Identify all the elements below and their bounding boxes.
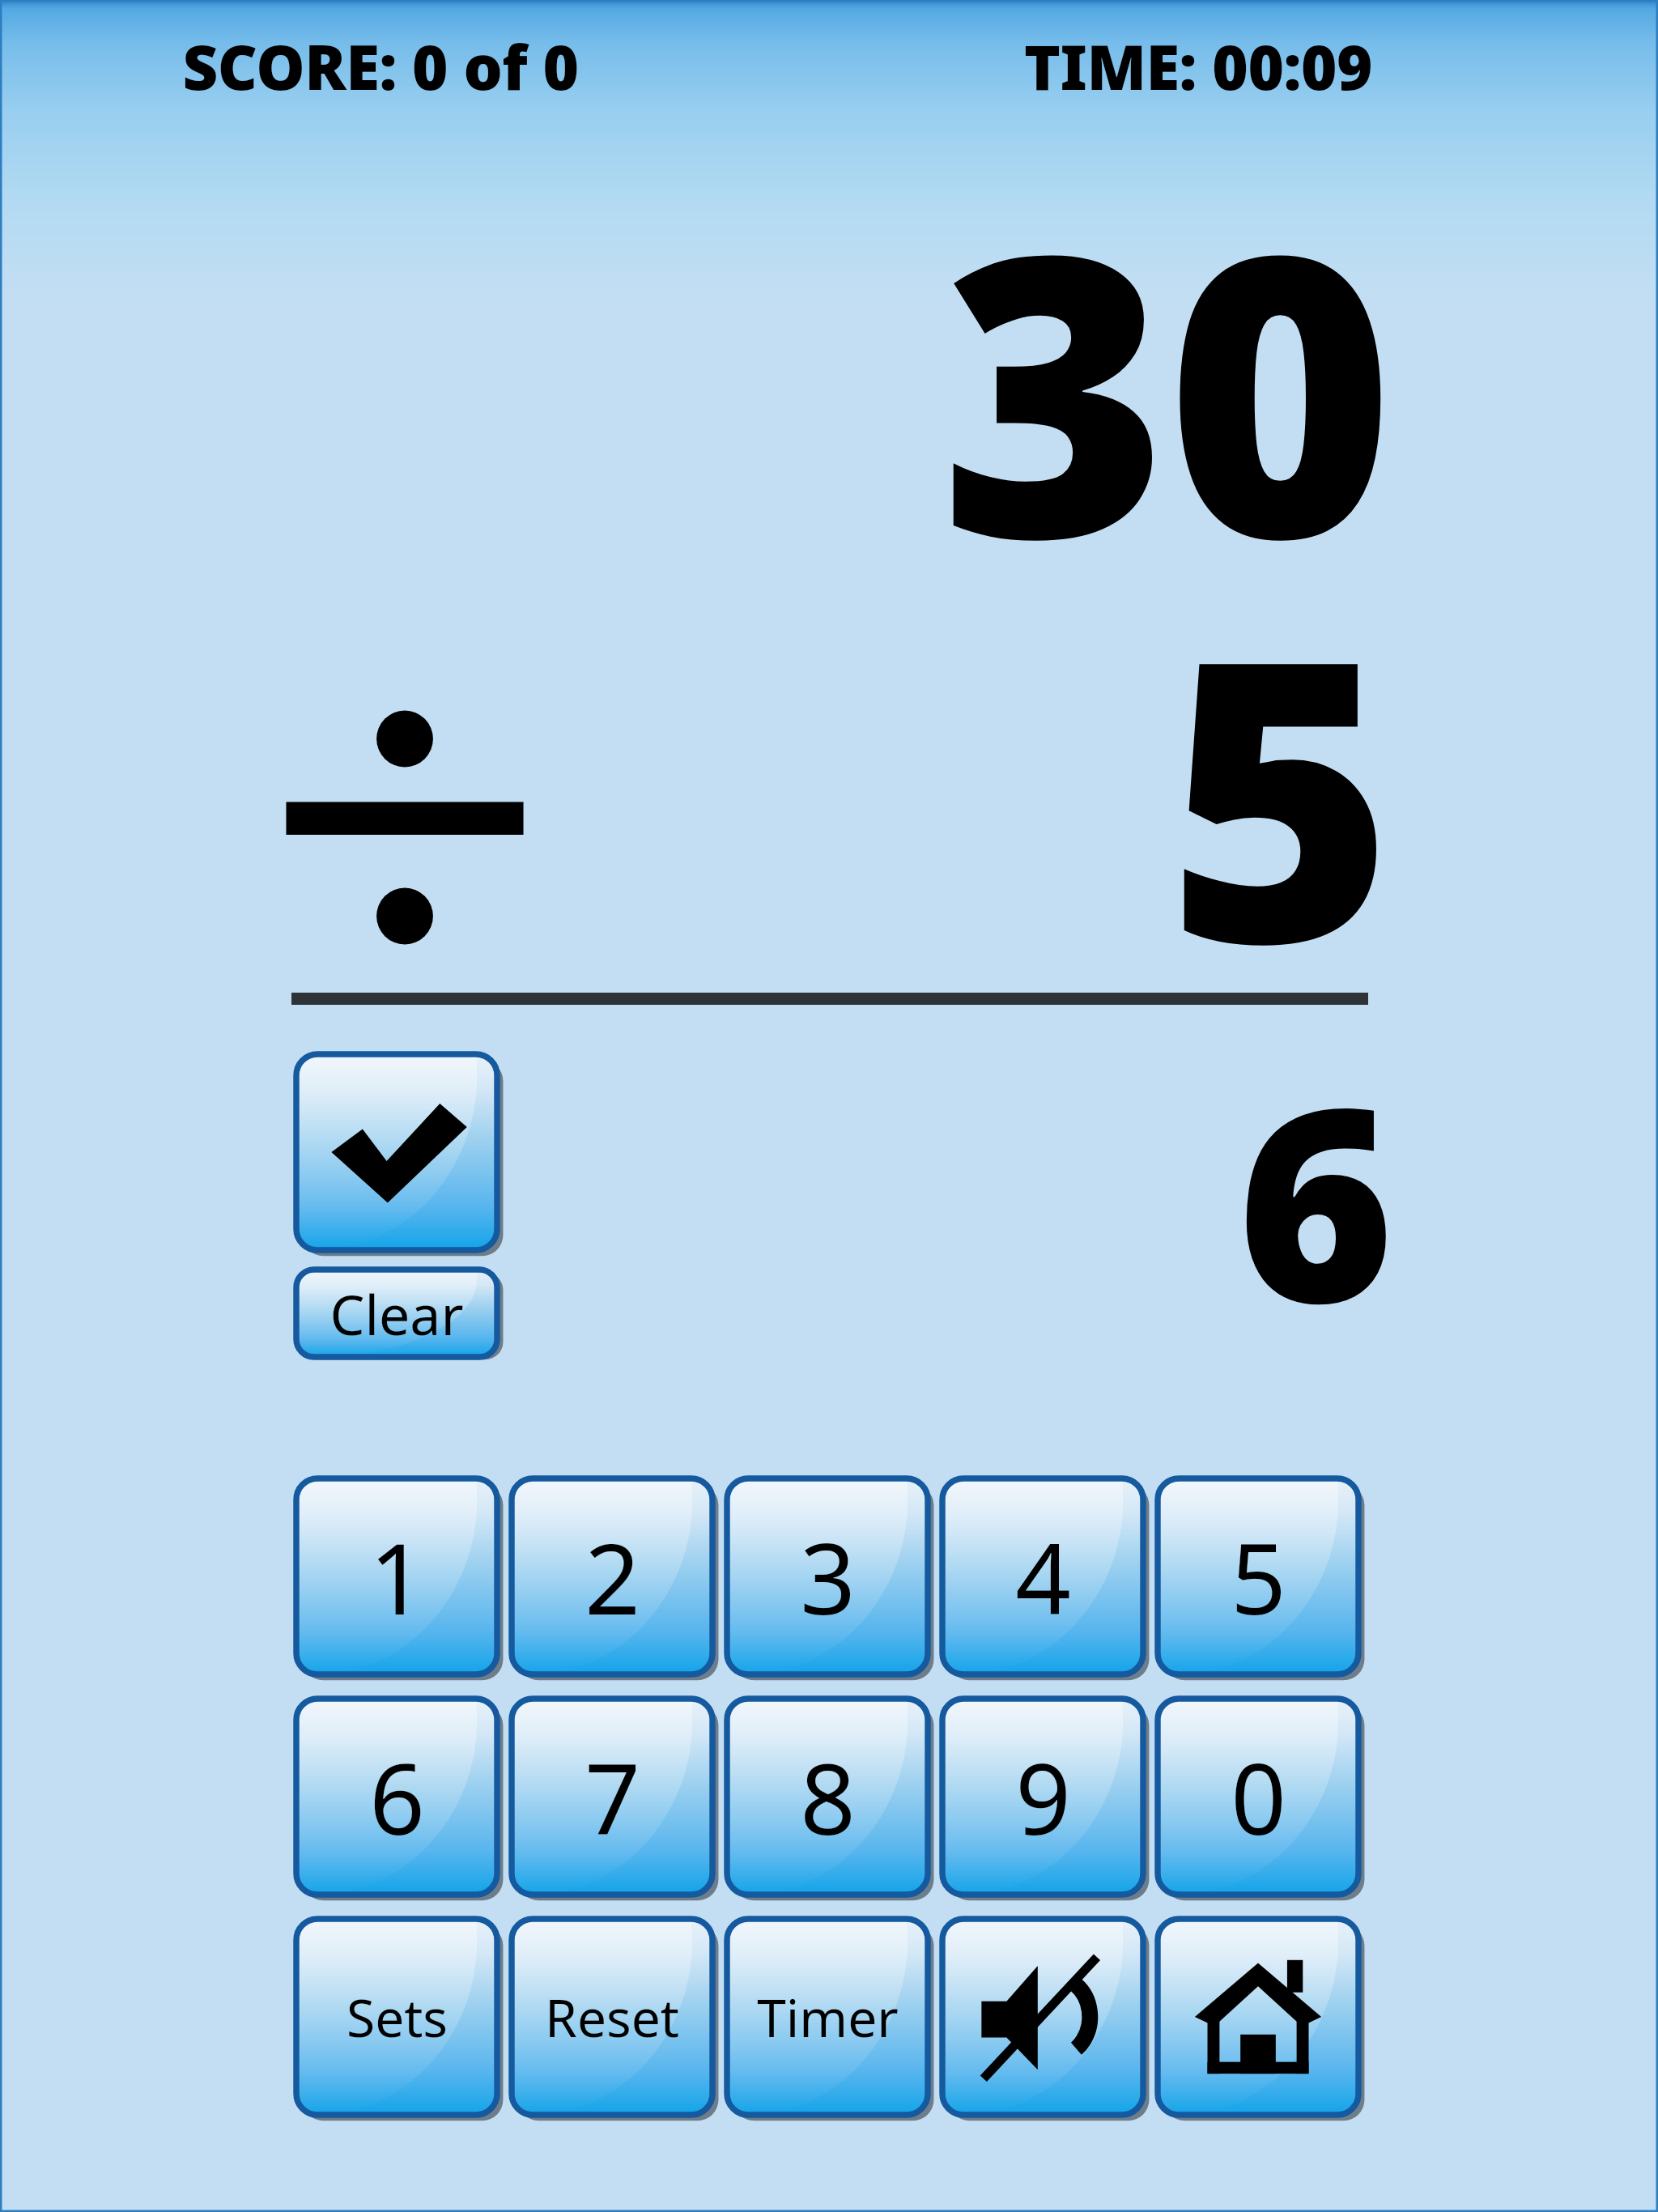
staticText: 6 <box>369 1731 425 1863</box>
button[interactable]: 6 <box>296 1699 497 1895</box>
button[interactable]: Reset <box>512 1919 712 2115</box>
button[interactable]: 5 <box>1158 1478 1358 1674</box>
staticText: 5 <box>1166 526 1392 1051</box>
staticText: 4 <box>1015 1511 1071 1643</box>
button[interactable]: Home <box>1158 1919 1358 2115</box>
button[interactable]: 1 <box>296 1478 497 1674</box>
button[interactable]: 7 <box>512 1699 712 1895</box>
button[interactable]: 3 <box>727 1478 928 1674</box>
staticText: 8 <box>800 1731 856 1863</box>
button[interactable]: Mute sound <box>942 1919 1143 2115</box>
staticText: 2 <box>585 1511 640 1643</box>
button[interactable]: 8 <box>727 1699 928 1895</box>
button[interactable]: Timer <box>727 1919 928 2115</box>
button[interactable]: 9 <box>942 1699 1143 1895</box>
button[interactable]: Sets <box>296 1919 497 2115</box>
button[interactable]: 0 <box>1158 1699 1358 1895</box>
staticText: Timer <box>757 1982 899 2052</box>
staticText: Clear <box>329 1276 464 1351</box>
staticText: 6 <box>1237 1016 1392 1377</box>
button[interactable]: Clear <box>296 1270 497 1357</box>
staticText: 9 <box>1015 1731 1071 1863</box>
staticText: SCORE: 0 of 0 <box>182 24 579 108</box>
staticText: TIME: 00:09 <box>1024 24 1372 108</box>
staticText: 1 <box>369 1511 425 1643</box>
staticText: 30 <box>940 121 1392 646</box>
staticText: 5 <box>1231 1511 1286 1643</box>
staticText: 7 <box>585 1731 640 1863</box>
button[interactable]: Check answer <box>296 1054 497 1250</box>
staticText: Sets <box>346 1982 448 2052</box>
staticText: Reset <box>545 1982 679 2052</box>
button[interactable]: 2 <box>512 1478 712 1674</box>
staticText: 3 <box>800 1511 856 1643</box>
button[interactable]: 4 <box>942 1478 1143 1674</box>
staticText: 0 <box>1231 1731 1286 1863</box>
